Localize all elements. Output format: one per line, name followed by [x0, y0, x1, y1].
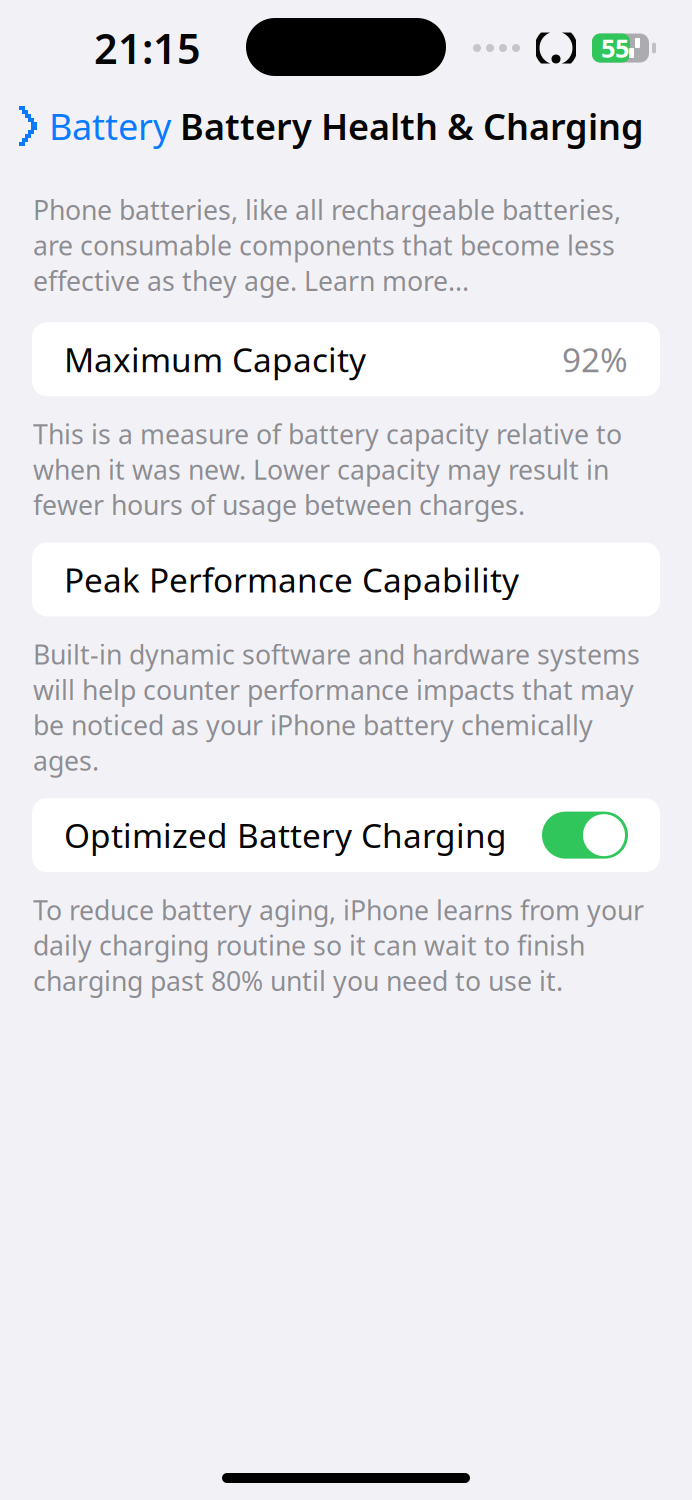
staticText: 55 — [601, 31, 629, 65]
staticText: Battery — [49, 102, 171, 150]
staticText: 21:15 — [94, 21, 201, 75]
staticText: Battery Health & Charging — [180, 102, 644, 150]
staticText: To reduce battery aging, iPhone learns f… — [33, 892, 644, 998]
staticText: Built-in dynamic software and hardware s… — [33, 636, 640, 778]
button[interactable]: Battery — [0, 93, 183, 159]
button[interactable]: Peak Performance Capability — [32, 542, 660, 616]
staticText: Phone batteries, like all rechargeable b… — [33, 192, 621, 298]
staticText: Peak Performance Capability — [64, 557, 519, 602]
staticText: This is a measure of battery capacity re… — [33, 416, 622, 522]
staticText: Maximum Capacity — [64, 337, 366, 381]
staticText: Optimized Battery Charging — [64, 813, 507, 857]
staticText: 92% — [562, 337, 628, 381]
button[interactable]: Optimized Battery Charging — [32, 798, 660, 872]
